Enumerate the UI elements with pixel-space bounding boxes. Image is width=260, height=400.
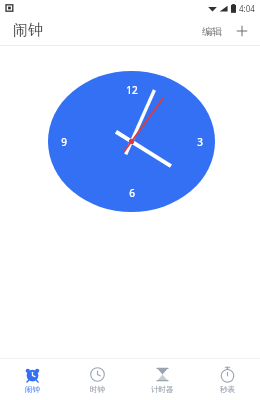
staticText: 12 bbox=[126, 83, 138, 97]
staticText: 3 bbox=[197, 135, 203, 149]
button[interactable]: 时钟 bbox=[65, 359, 130, 400]
staticText: 秒表 bbox=[220, 385, 235, 394]
button[interactable]: 秒表 bbox=[195, 359, 260, 400]
staticText: 6 bbox=[129, 186, 135, 200]
staticText: 编辑 bbox=[202, 25, 222, 38]
button[interactable]: 计时器 bbox=[130, 359, 195, 400]
button[interactable]: 闹钟 bbox=[0, 359, 65, 400]
staticText: 4:04 bbox=[239, 3, 255, 14]
button[interactable]: Add alarm bbox=[232, 21, 252, 41]
staticText: 时钟 bbox=[90, 385, 105, 394]
staticText: 闹钟 bbox=[13, 21, 43, 40]
staticText: 闹钟 bbox=[25, 385, 40, 394]
staticText: 9 bbox=[61, 135, 67, 149]
staticText: 计时器 bbox=[151, 385, 174, 394]
button[interactable]: 编辑 bbox=[199, 22, 225, 41]
